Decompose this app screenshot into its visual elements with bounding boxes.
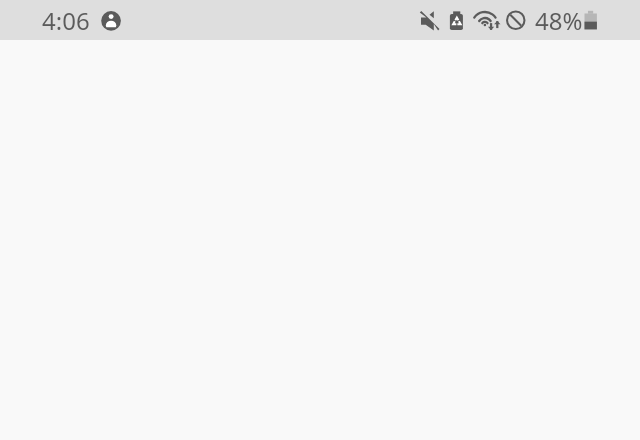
- button[interactable]: Battery 48 percent: [583, 0, 599, 40]
- other: Status bar: [0, 0, 640, 40]
- other: Content: [0, 0, 640, 440]
- button[interactable]: Battery saver on: [449, 0, 463, 40]
- staticText: 48%: [535, 4, 583, 37]
- staticText: 4:06: [42, 4, 90, 37]
- button[interactable]: Wi-Fi connected: [472, 0, 500, 40]
- button[interactable]: Do not disturb on: [505, 0, 526, 40]
- button[interactable]: Account: [101, 0, 121, 40]
- button[interactable]: 4:06: [42, 0, 90, 40]
- button[interactable]: 48%: [535, 0, 583, 40]
- button[interactable]: Ringer muted: [419, 0, 440, 40]
